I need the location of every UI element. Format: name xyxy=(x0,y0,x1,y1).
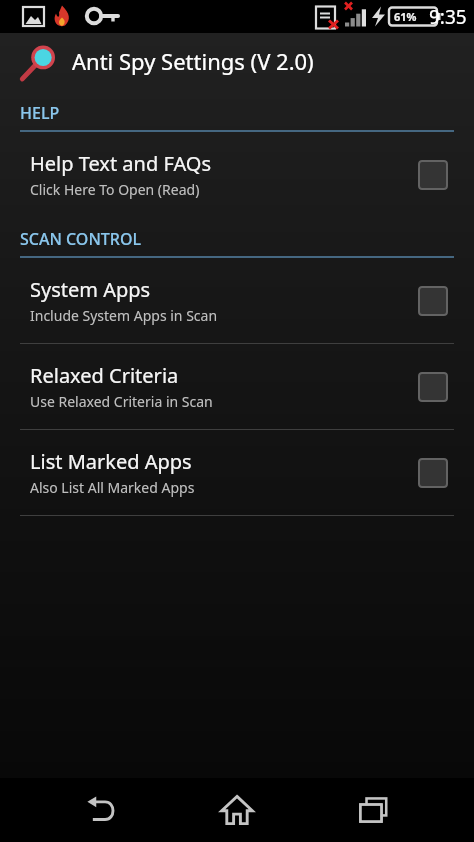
staticText: 61% xyxy=(394,9,417,24)
staticText: HELP xyxy=(20,102,60,124)
staticText: SCAN CONTROL xyxy=(20,228,142,250)
staticText: 9:35 xyxy=(429,4,467,30)
button[interactable]: Recent apps xyxy=(338,778,410,842)
button[interactable]: Help Text and FAQs xyxy=(0,132,474,217)
button[interactable]: List Marked Apps xyxy=(0,430,474,515)
button[interactable]: Home xyxy=(201,778,273,842)
button[interactable]: Relaxed Criteria checkbox xyxy=(418,372,448,402)
staticText: Use Relaxed Criteria in Scan xyxy=(30,392,213,411)
staticText: Help Text and FAQs xyxy=(30,150,211,177)
staticText: Relaxed Criteria xyxy=(30,362,179,389)
staticText: Click Here To Open (Read) xyxy=(30,180,200,199)
staticText: System Apps xyxy=(30,276,151,303)
staticText: Also List All Marked Apps xyxy=(30,478,195,497)
button[interactable]: Back xyxy=(65,778,137,842)
button[interactable]: List Marked Apps checkbox xyxy=(418,458,448,488)
button[interactable]: Help Text and FAQs checkbox xyxy=(418,160,448,190)
staticText: List Marked Apps xyxy=(30,448,192,475)
button[interactable]: Relaxed Criteria xyxy=(0,344,474,429)
staticText: Include System Apps in Scan xyxy=(30,306,218,325)
staticText: Anti Spy Settings (V 2.0) xyxy=(72,46,314,76)
button[interactable]: System Apps checkbox xyxy=(418,286,448,316)
button[interactable]: System Apps xyxy=(0,258,474,343)
